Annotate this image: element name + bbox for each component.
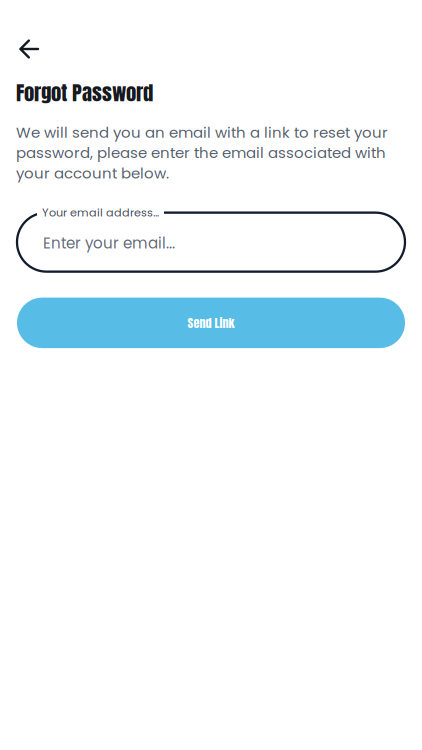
staticText: Your email address... [42,205,159,220]
staticText: Send Link [187,314,234,332]
button[interactable]: Send Link [17,298,405,348]
button[interactable]: Back [0,0,53,71]
staticText: We will send you an email with a link to… [16,122,388,184]
button[interactable]: Your email address [17,213,405,272]
staticText: Forgot Password [16,77,153,108]
staticText: Enter your email... [43,233,175,254]
